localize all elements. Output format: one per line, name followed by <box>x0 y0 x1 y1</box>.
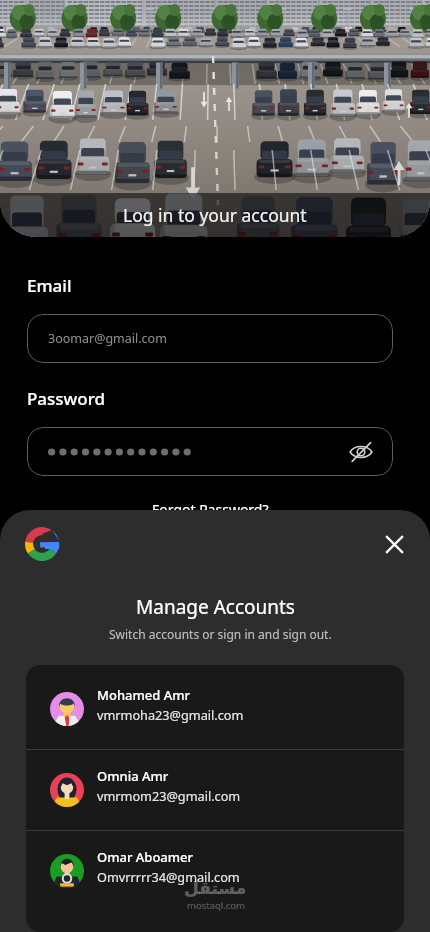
staticText: مستقل <box>184 878 247 898</box>
staticText: Switch accounts or sign in and sign out. <box>109 626 332 642</box>
staticText: vmrmom23@gmail.com <box>97 787 241 804</box>
staticText: Omvrrrrr34@gmail.com <box>97 868 240 885</box>
staticText: Omar Aboamer <box>97 848 194 866</box>
button[interactable]: Forgot Password? <box>152 500 269 519</box>
staticText: Omnia Amr <box>97 767 169 785</box>
staticText: Mohamed Amr <box>97 686 191 704</box>
staticText: 3oomar@gmail.com <box>48 330 167 347</box>
staticText: Manage Accounts <box>136 594 295 620</box>
button[interactable]: Mohamed Amr <box>26 669 404 749</box>
button[interactable]: 3oomar@gmail.com <box>27 314 393 363</box>
button[interactable]: Show password <box>345 436 377 468</box>
staticText: mostaql.com <box>187 899 245 912</box>
button[interactable]: Omnia Amr <box>26 750 404 830</box>
staticText: Email <box>27 274 72 297</box>
button[interactable]: Omar Aboamer <box>26 831 404 911</box>
staticText: Log in to your account <box>123 203 307 227</box>
button[interactable]: Close <box>377 527 411 561</box>
staticText: vmrmoha23@gmail.com <box>97 706 244 723</box>
staticText: Password <box>27 387 106 410</box>
button[interactable]: Show password <box>27 427 393 476</box>
